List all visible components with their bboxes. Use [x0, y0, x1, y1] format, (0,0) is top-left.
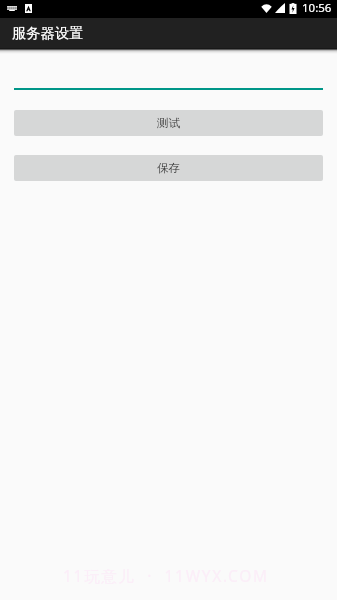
button[interactable]: 保存 [14, 155, 323, 181]
button[interactable]: 服务器地址输入框 [14, 64, 323, 90]
staticText: 10:56 [302, 0, 332, 16]
staticText: 保存 [157, 161, 180, 175]
staticText: 服务器设置 [12, 24, 84, 42]
staticText: 11玩意儿 · 11WYX.COM [63, 565, 269, 586]
button[interactable]: 测试 [14, 110, 323, 136]
staticText: 测试 [157, 116, 180, 130]
